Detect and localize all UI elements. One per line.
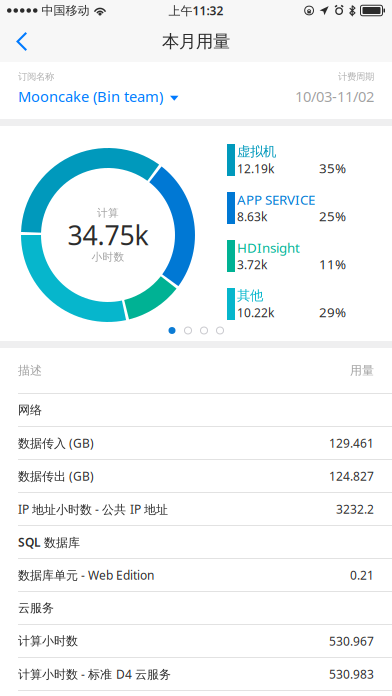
staticText: 10.22k (237, 304, 274, 320)
staticText: 8.63k (237, 208, 267, 224)
staticText: 计算 (97, 206, 119, 219)
staticText: IP 地址小时数 - 公共 IP 地址 (18, 501, 168, 517)
staticText: 用量 (350, 363, 374, 378)
staticText: 3.72k (237, 256, 267, 272)
staticText: 数据库单元 - Web Edition (18, 567, 154, 583)
staticText: 12.19k (237, 160, 274, 176)
staticText: 530.967 (329, 633, 374, 649)
staticText: 描述 (18, 363, 42, 378)
staticText: 计算小时数 (18, 634, 78, 648)
staticText: 网络 (18, 403, 42, 417)
staticText: 34.75k (67, 217, 148, 253)
staticText: 530.983 (329, 666, 374, 682)
staticText: 数据传入 (GB) (18, 435, 94, 451)
staticText: 10/03-11/02 (295, 86, 374, 106)
staticText: 129.461 (329, 435, 374, 451)
staticText: 计算小时数 - 标准 D4 云服务 (18, 666, 171, 682)
staticText: 数据传出 (GB) (18, 468, 94, 484)
staticText: APP SERVICE (237, 191, 315, 208)
staticText: 29% (319, 303, 346, 321)
button[interactable]: Back (0, 21, 44, 62)
staticText: 124.827 (329, 468, 374, 484)
staticText: 上午11:32 (168, 2, 223, 18)
staticText: 25% (319, 207, 346, 225)
staticText: 35% (319, 159, 346, 177)
staticText: HDInsight (237, 239, 300, 256)
staticText: 0.21 (350, 567, 374, 583)
staticText: 云服务 (18, 601, 54, 615)
staticText: 其他 (237, 287, 263, 304)
staticText: 11% (319, 255, 346, 273)
staticText: 虚拟机 (237, 143, 276, 160)
staticText: 小时数 (91, 250, 124, 263)
staticText: Mooncake (Bin team) (18, 86, 163, 106)
button[interactable]: Mooncake (Bin team) (18, 86, 178, 106)
staticText: SQL 数据库 (18, 534, 80, 550)
staticText: 本月用量 (162, 31, 230, 52)
staticText: 计费周期 (338, 71, 374, 82)
staticText: 订阅名称 (18, 71, 54, 82)
staticText: 中国移动 (41, 3, 89, 18)
staticText: 3232.2 (336, 501, 374, 517)
